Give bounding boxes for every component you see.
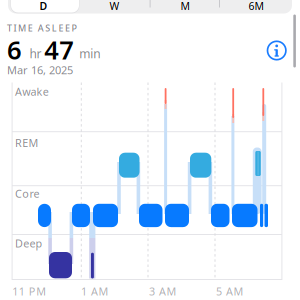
staticText: D (39, 0, 47, 13)
staticText: REM (15, 136, 38, 150)
button[interactable]: D (8, 0, 78, 12)
staticText: hr (29, 46, 41, 61)
staticText: 47 (44, 33, 74, 67)
staticText: Mar 16, 2025 (7, 63, 73, 77)
staticText: 1 AM (81, 284, 108, 298)
button[interactable] (265, 38, 289, 62)
staticText: min (79, 46, 100, 61)
staticText: TIME ASLEEP (7, 22, 76, 34)
staticText: 11 PM (12, 284, 46, 298)
staticText: 6M (248, 0, 264, 13)
staticText: 3 AM (149, 284, 176, 298)
staticText: Core (15, 186, 40, 201)
staticText: Awake (15, 84, 49, 99)
staticText: Deep (15, 236, 43, 250)
staticText: 5 AM (216, 284, 243, 298)
staticText: M (180, 0, 190, 13)
button[interactable]: W (79, 0, 149, 12)
button[interactable]: 6M (221, 0, 291, 12)
staticText: 6 (7, 33, 22, 67)
staticText: W (109, 0, 119, 13)
button[interactable]: M (150, 0, 220, 12)
